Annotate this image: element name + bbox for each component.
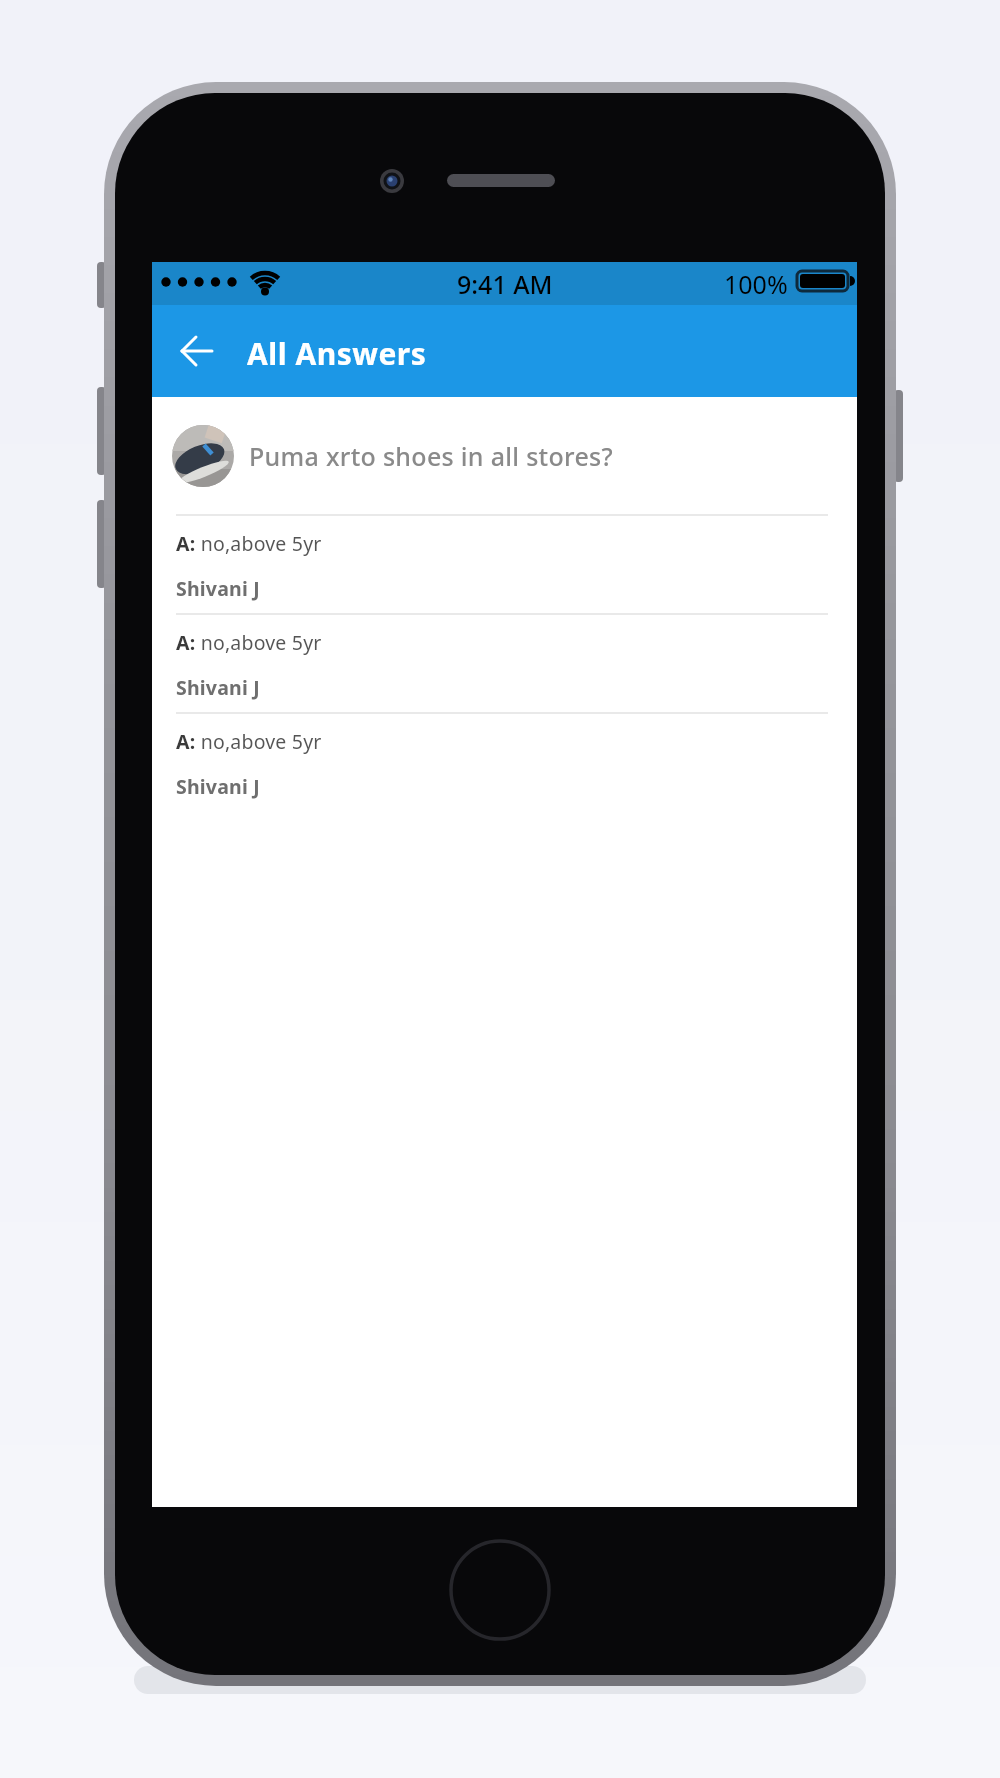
staticText: Puma xrto shoes in all stores? [249,439,613,473]
staticText: 100% [724,267,788,301]
staticText: A: no,above 5yr [176,728,322,755]
staticText: Shivani J [176,674,260,701]
button[interactable]: Puma xrto shoes in all stores? [172,425,832,487]
staticText: Shivani J [176,575,260,602]
staticText: All Answers [247,333,427,374]
button[interactable]: A: no,above 5yr [176,712,828,811]
button[interactable] [166,334,228,368]
staticText: A: no,above 5yr [176,629,322,656]
button[interactable]: A: no,above 5yr [176,514,828,613]
staticText: A: no,above 5yr [176,530,322,557]
staticText: 9:41 AM [457,267,553,301]
staticText: Shivani J [176,773,260,800]
button[interactable]: A: no,above 5yr [176,613,828,712]
